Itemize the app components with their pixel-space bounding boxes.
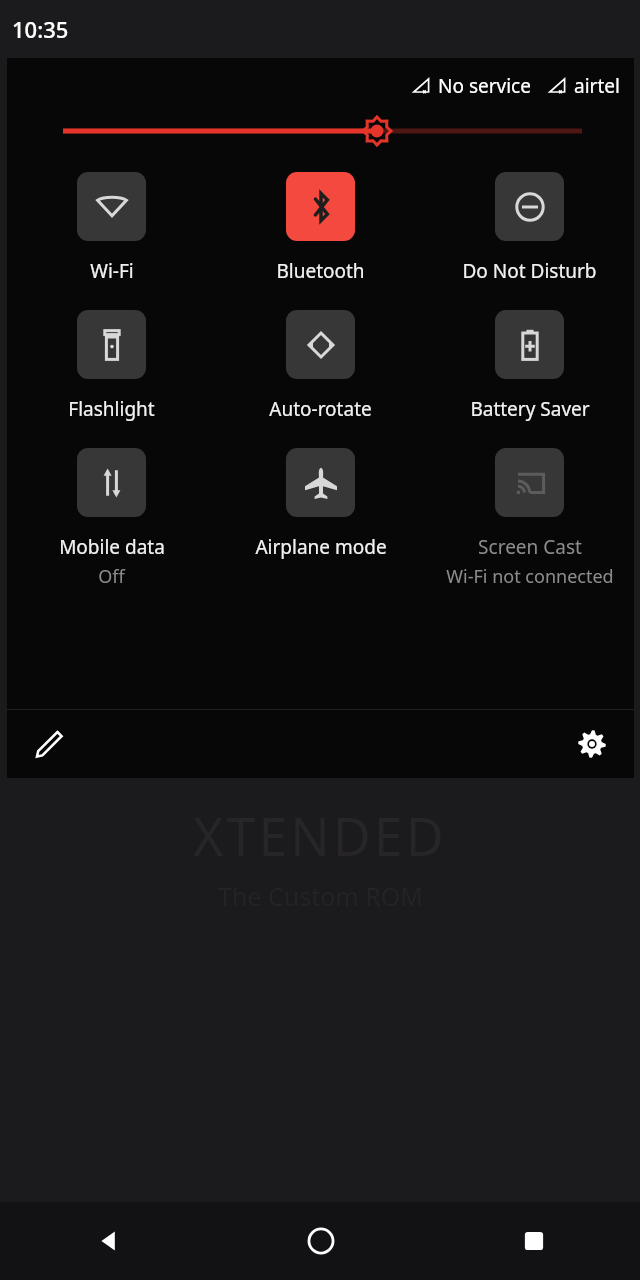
staticText: The Custom ROM	[218, 879, 423, 913]
staticText: Airplane mode	[255, 534, 387, 560]
button[interactable]: Home	[214, 1202, 427, 1280]
button[interactable]: Back	[0, 1202, 214, 1280]
staticText: Battery Saver	[470, 396, 590, 422]
staticText: Flashlight	[68, 396, 155, 422]
staticText: Bluetooth	[276, 258, 365, 284]
button[interactable]: Mobile data	[7, 448, 216, 589]
staticText: Auto-rotate	[269, 396, 372, 422]
staticText: No service	[438, 73, 531, 99]
button[interactable]: Screen Cast	[425, 448, 634, 589]
button[interactable]: Battery Saver	[425, 310, 634, 422]
staticText: Screen Cast	[478, 534, 582, 560]
staticText: airtel	[574, 73, 620, 99]
staticText: Wi-Fi	[90, 258, 134, 284]
staticText: Off	[98, 564, 125, 589]
button[interactable]: Bluetooth	[216, 172, 425, 284]
button[interactable]: Flashlight	[7, 310, 216, 422]
button[interactable]: Auto-rotate	[216, 310, 425, 422]
staticText: XTENDED	[193, 800, 447, 871]
staticText: Do Not Disturb	[462, 258, 597, 284]
staticText: Wi-Fi not connected	[446, 564, 614, 589]
button[interactable]: Airplane mode	[216, 448, 425, 560]
button[interactable]: Wi-Fi	[7, 172, 216, 284]
button[interactable]: Edit tiles	[23, 718, 75, 770]
staticText: Mobile data	[59, 534, 165, 560]
button[interactable]: Do Not Disturb	[425, 172, 634, 284]
button[interactable]: Recents	[427, 1202, 640, 1280]
staticText: 10:35	[12, 14, 69, 44]
button[interactable]: Settings	[566, 718, 618, 770]
